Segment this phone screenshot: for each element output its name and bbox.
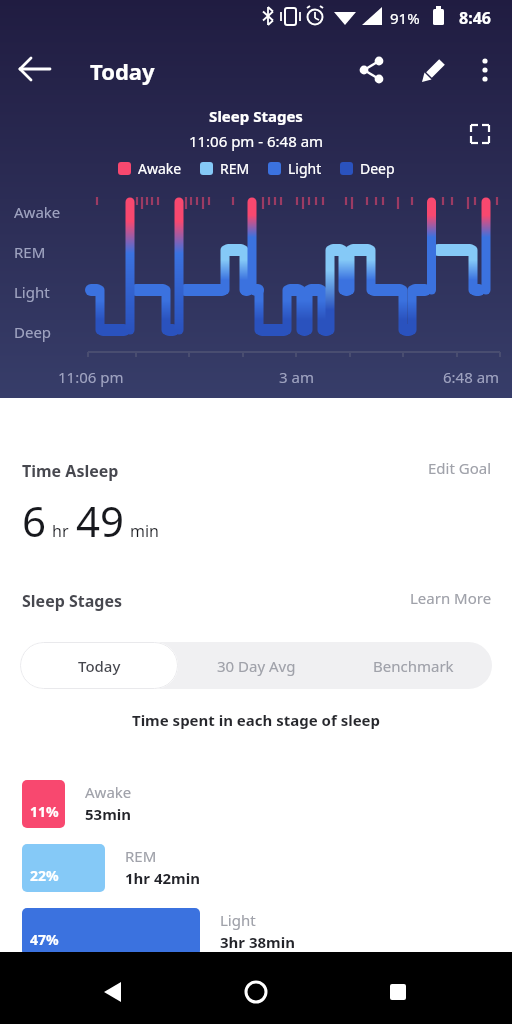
button[interactable]: Learn More bbox=[410, 588, 492, 608]
staticText: min bbox=[130, 520, 159, 542]
button[interactable] bbox=[467, 52, 503, 88]
staticText: Time spent in each stage of sleep bbox=[0, 710, 512, 730]
button[interactable] bbox=[355, 52, 391, 88]
button[interactable] bbox=[466, 120, 494, 148]
staticText: 53min bbox=[85, 804, 132, 824]
button[interactable]: Today bbox=[20, 642, 178, 689]
button[interactable] bbox=[93, 972, 133, 1012]
staticText: REM bbox=[220, 159, 250, 178]
staticText: 11:06 pm bbox=[58, 367, 124, 387]
staticText: 11:06 pm - 6:48 am bbox=[0, 131, 512, 151]
staticText: 11% bbox=[30, 802, 59, 821]
staticText: 1hr 42min bbox=[125, 868, 200, 888]
staticText: 30 Day Avg bbox=[217, 656, 296, 676]
button[interactable] bbox=[236, 972, 276, 1012]
button[interactable] bbox=[10, 55, 56, 101]
staticText: Light bbox=[220, 910, 256, 930]
staticText: 3 am bbox=[279, 367, 314, 387]
button[interactable]: Edit Goal bbox=[428, 458, 492, 478]
staticText: hr bbox=[52, 520, 69, 542]
staticText: Awake bbox=[138, 159, 182, 178]
staticText: Light bbox=[288, 159, 322, 178]
button[interactable] bbox=[415, 52, 451, 88]
staticText: 6 bbox=[22, 492, 47, 549]
staticText: Deep bbox=[360, 159, 395, 178]
staticText: Benchmark bbox=[373, 656, 454, 676]
staticText: REM bbox=[125, 846, 157, 866]
staticText: Sleep Stages bbox=[22, 590, 123, 612]
staticText: Awake bbox=[85, 782, 132, 802]
button[interactable]: 30 Day Avg bbox=[178, 642, 335, 689]
staticText: Time Asleep bbox=[22, 460, 119, 482]
staticText: Today bbox=[90, 56, 155, 86]
button[interactable] bbox=[378, 972, 418, 1012]
staticText: 91% bbox=[390, 8, 420, 28]
staticText: 3hr 38min bbox=[220, 932, 295, 952]
staticText: Today bbox=[78, 656, 121, 676]
staticText: Light bbox=[14, 282, 50, 302]
staticText: Awake bbox=[14, 202, 61, 222]
staticText: 22% bbox=[30, 866, 59, 885]
staticText: 49 bbox=[76, 492, 125, 549]
staticText: 8:46 bbox=[459, 7, 491, 29]
button[interactable]: Benchmark bbox=[335, 642, 492, 689]
staticText: Deep bbox=[14, 322, 52, 342]
staticText: 6:48 am bbox=[443, 367, 500, 387]
staticText: Sleep Stages bbox=[0, 106, 512, 126]
staticText: REM bbox=[14, 242, 46, 262]
staticText: 47% bbox=[30, 930, 59, 949]
